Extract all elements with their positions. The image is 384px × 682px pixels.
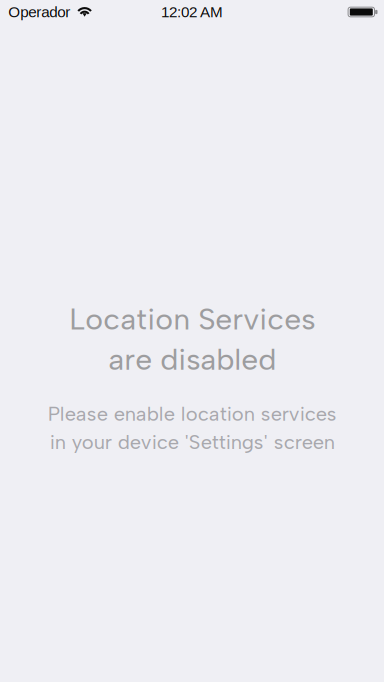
staticText: Please enable location services in your … [47, 402, 336, 454]
staticText: Location Services are disabled [69, 301, 315, 377]
staticText: Operador [8, 3, 70, 20]
staticText: 12:02 AM [161, 3, 223, 20]
